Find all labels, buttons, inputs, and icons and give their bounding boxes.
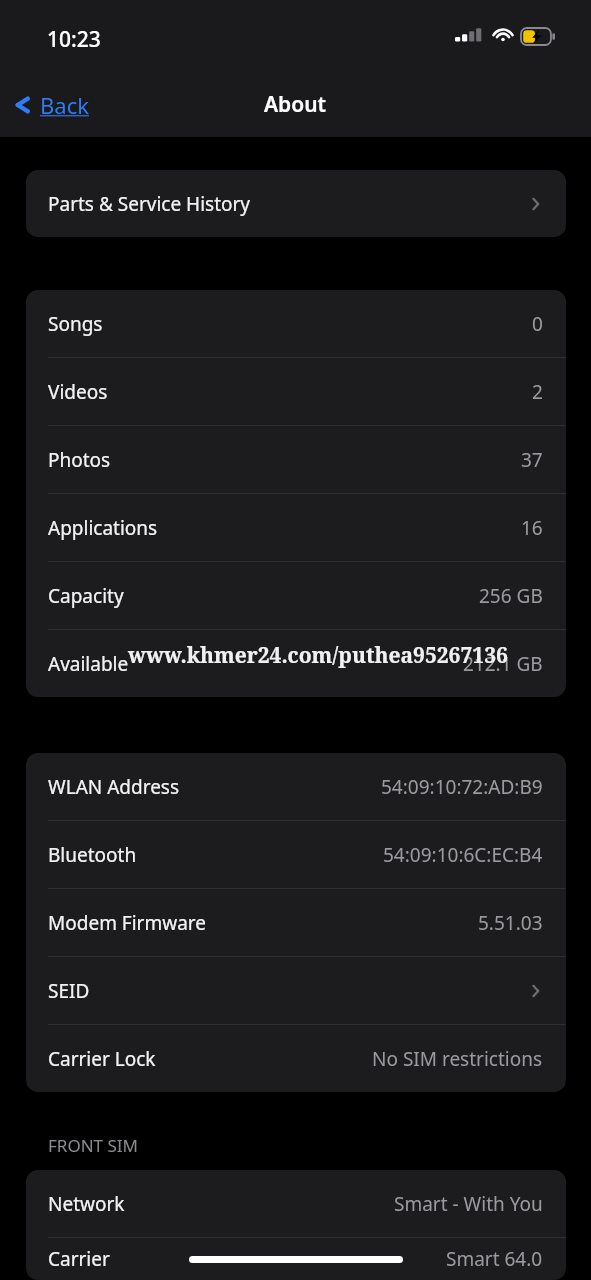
staticText: 54:09:10:72:AD:B9	[381, 774, 543, 800]
staticText: WLAN Address	[48, 774, 180, 800]
button[interactable]: Bluetooth	[26, 821, 566, 888]
staticText: 256 GB	[479, 583, 543, 609]
other: Cellular signal	[455, 27, 483, 47]
other: Wi-Fi	[491, 26, 515, 46]
button[interactable]: Carrier Lock	[26, 1025, 566, 1092]
staticText: No SIM restrictions	[372, 1046, 543, 1072]
button[interactable]: Videos	[26, 358, 566, 425]
button[interactable]: Songs	[26, 290, 566, 357]
button[interactable]: SEID	[26, 957, 566, 1024]
button[interactable]: Applications	[26, 494, 566, 561]
staticText: Videos	[48, 379, 108, 405]
staticText: Back	[40, 90, 89, 120]
staticText: 10:23	[47, 25, 101, 54]
staticText: About	[264, 90, 327, 119]
staticText: Songs	[48, 311, 103, 337]
staticText: 37	[521, 447, 543, 473]
staticText: Applications	[48, 515, 158, 541]
button[interactable]: Carrier	[26, 1238, 566, 1280]
staticText: 2	[532, 379, 543, 405]
staticText: Bluetooth	[48, 842, 137, 868]
staticText: FRONT SIM	[48, 1134, 138, 1157]
staticText: SEID	[48, 978, 90, 1004]
staticText: Capacity	[48, 583, 124, 609]
staticText: Carrier Lock	[48, 1046, 156, 1072]
button[interactable]: Modem Firmware	[26, 889, 566, 956]
staticText: Carrier	[48, 1246, 110, 1272]
button[interactable]: Parts & Service History	[26, 170, 566, 237]
staticText: Photos	[48, 447, 111, 473]
staticText: www.khmer24.com/puthea95267136	[128, 641, 508, 670]
staticText: Network	[48, 1191, 125, 1217]
staticText: Smart 64.0	[446, 1246, 543, 1272]
staticText: Modem Firmware	[48, 910, 206, 936]
button[interactable]: Photos	[26, 426, 566, 493]
button[interactable]: Available	[26, 630, 566, 697]
button[interactable]: Back	[8, 83, 93, 127]
staticText: 0	[532, 311, 543, 337]
staticText: 5.51.03	[478, 910, 543, 936]
staticText: Parts & Service History	[48, 191, 251, 217]
staticText: 16	[521, 515, 543, 541]
button[interactable]: WLAN Address	[26, 753, 566, 820]
staticText: Smart - With You	[394, 1191, 543, 1217]
staticText: Available	[48, 651, 129, 677]
other: Battery charging	[521, 28, 555, 45]
staticText: 54:09:10:6C:EC:B4	[383, 842, 543, 868]
staticText: 212.1 GB	[463, 651, 543, 677]
button[interactable]: Capacity	[26, 562, 566, 629]
button[interactable]: Network	[26, 1170, 566, 1237]
